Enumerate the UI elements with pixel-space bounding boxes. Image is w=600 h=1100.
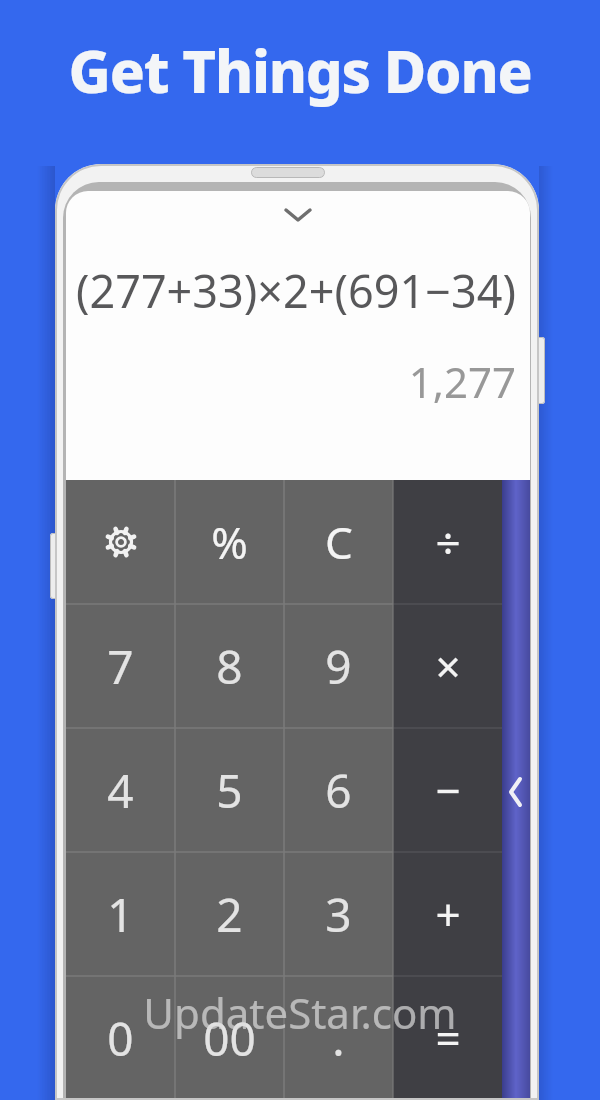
button[interactable]: = — [393, 976, 502, 1100]
button[interactable]: 5 — [175, 728, 284, 852]
staticText: + — [435, 884, 461, 944]
button[interactable] — [66, 480, 175, 604]
staticText: Get Things Done — [0, 31, 600, 110]
staticText: × — [435, 636, 461, 696]
staticText: 00 — [203, 1007, 256, 1070]
staticText: 6 — [325, 759, 352, 822]
button[interactable]: 0 — [66, 976, 175, 1100]
staticText: 4 — [107, 759, 134, 822]
staticText: 3 — [325, 883, 352, 946]
staticText: ÷ — [435, 512, 461, 572]
staticText: % — [211, 512, 248, 572]
staticText: (277+33)×2+(691−34) — [66, 260, 516, 321]
button[interactable]: × — [393, 604, 502, 728]
button[interactable]: ÷ — [393, 480, 502, 604]
button[interactable]: − — [393, 728, 502, 852]
button[interactable]: + — [393, 852, 502, 976]
staticText: 0 — [107, 1007, 134, 1070]
button[interactable]: C — [284, 480, 393, 604]
button[interactable]: 2 — [175, 852, 284, 976]
button[interactable]: % — [175, 480, 284, 604]
button[interactable]: 8 — [175, 604, 284, 728]
button[interactable]: 6 — [284, 728, 393, 852]
button[interactable]: 4 — [66, 728, 175, 852]
button[interactable]: 00 — [175, 976, 284, 1100]
staticText: 5 — [216, 759, 243, 822]
button[interactable] — [504, 775, 528, 809]
staticText: = — [435, 1008, 461, 1068]
staticText: . — [332, 1007, 345, 1070]
button[interactable]: . — [284, 976, 393, 1100]
button[interactable] — [284, 205, 312, 225]
button[interactable]: 7 — [66, 604, 175, 728]
button[interactable]: 9 — [284, 604, 393, 728]
staticText: 1,277 — [66, 353, 516, 410]
button[interactable]: 1 — [66, 852, 175, 976]
staticText: 8 — [216, 635, 243, 698]
staticText: 2 — [216, 883, 243, 946]
button[interactable]: 3 — [284, 852, 393, 976]
staticText: UpdateStar.com — [0, 984, 600, 1041]
staticText: 9 — [325, 635, 352, 698]
staticText: 7 — [107, 635, 134, 698]
staticText: 1 — [107, 883, 134, 946]
staticText: C — [325, 512, 353, 572]
staticText: − — [435, 760, 461, 820]
